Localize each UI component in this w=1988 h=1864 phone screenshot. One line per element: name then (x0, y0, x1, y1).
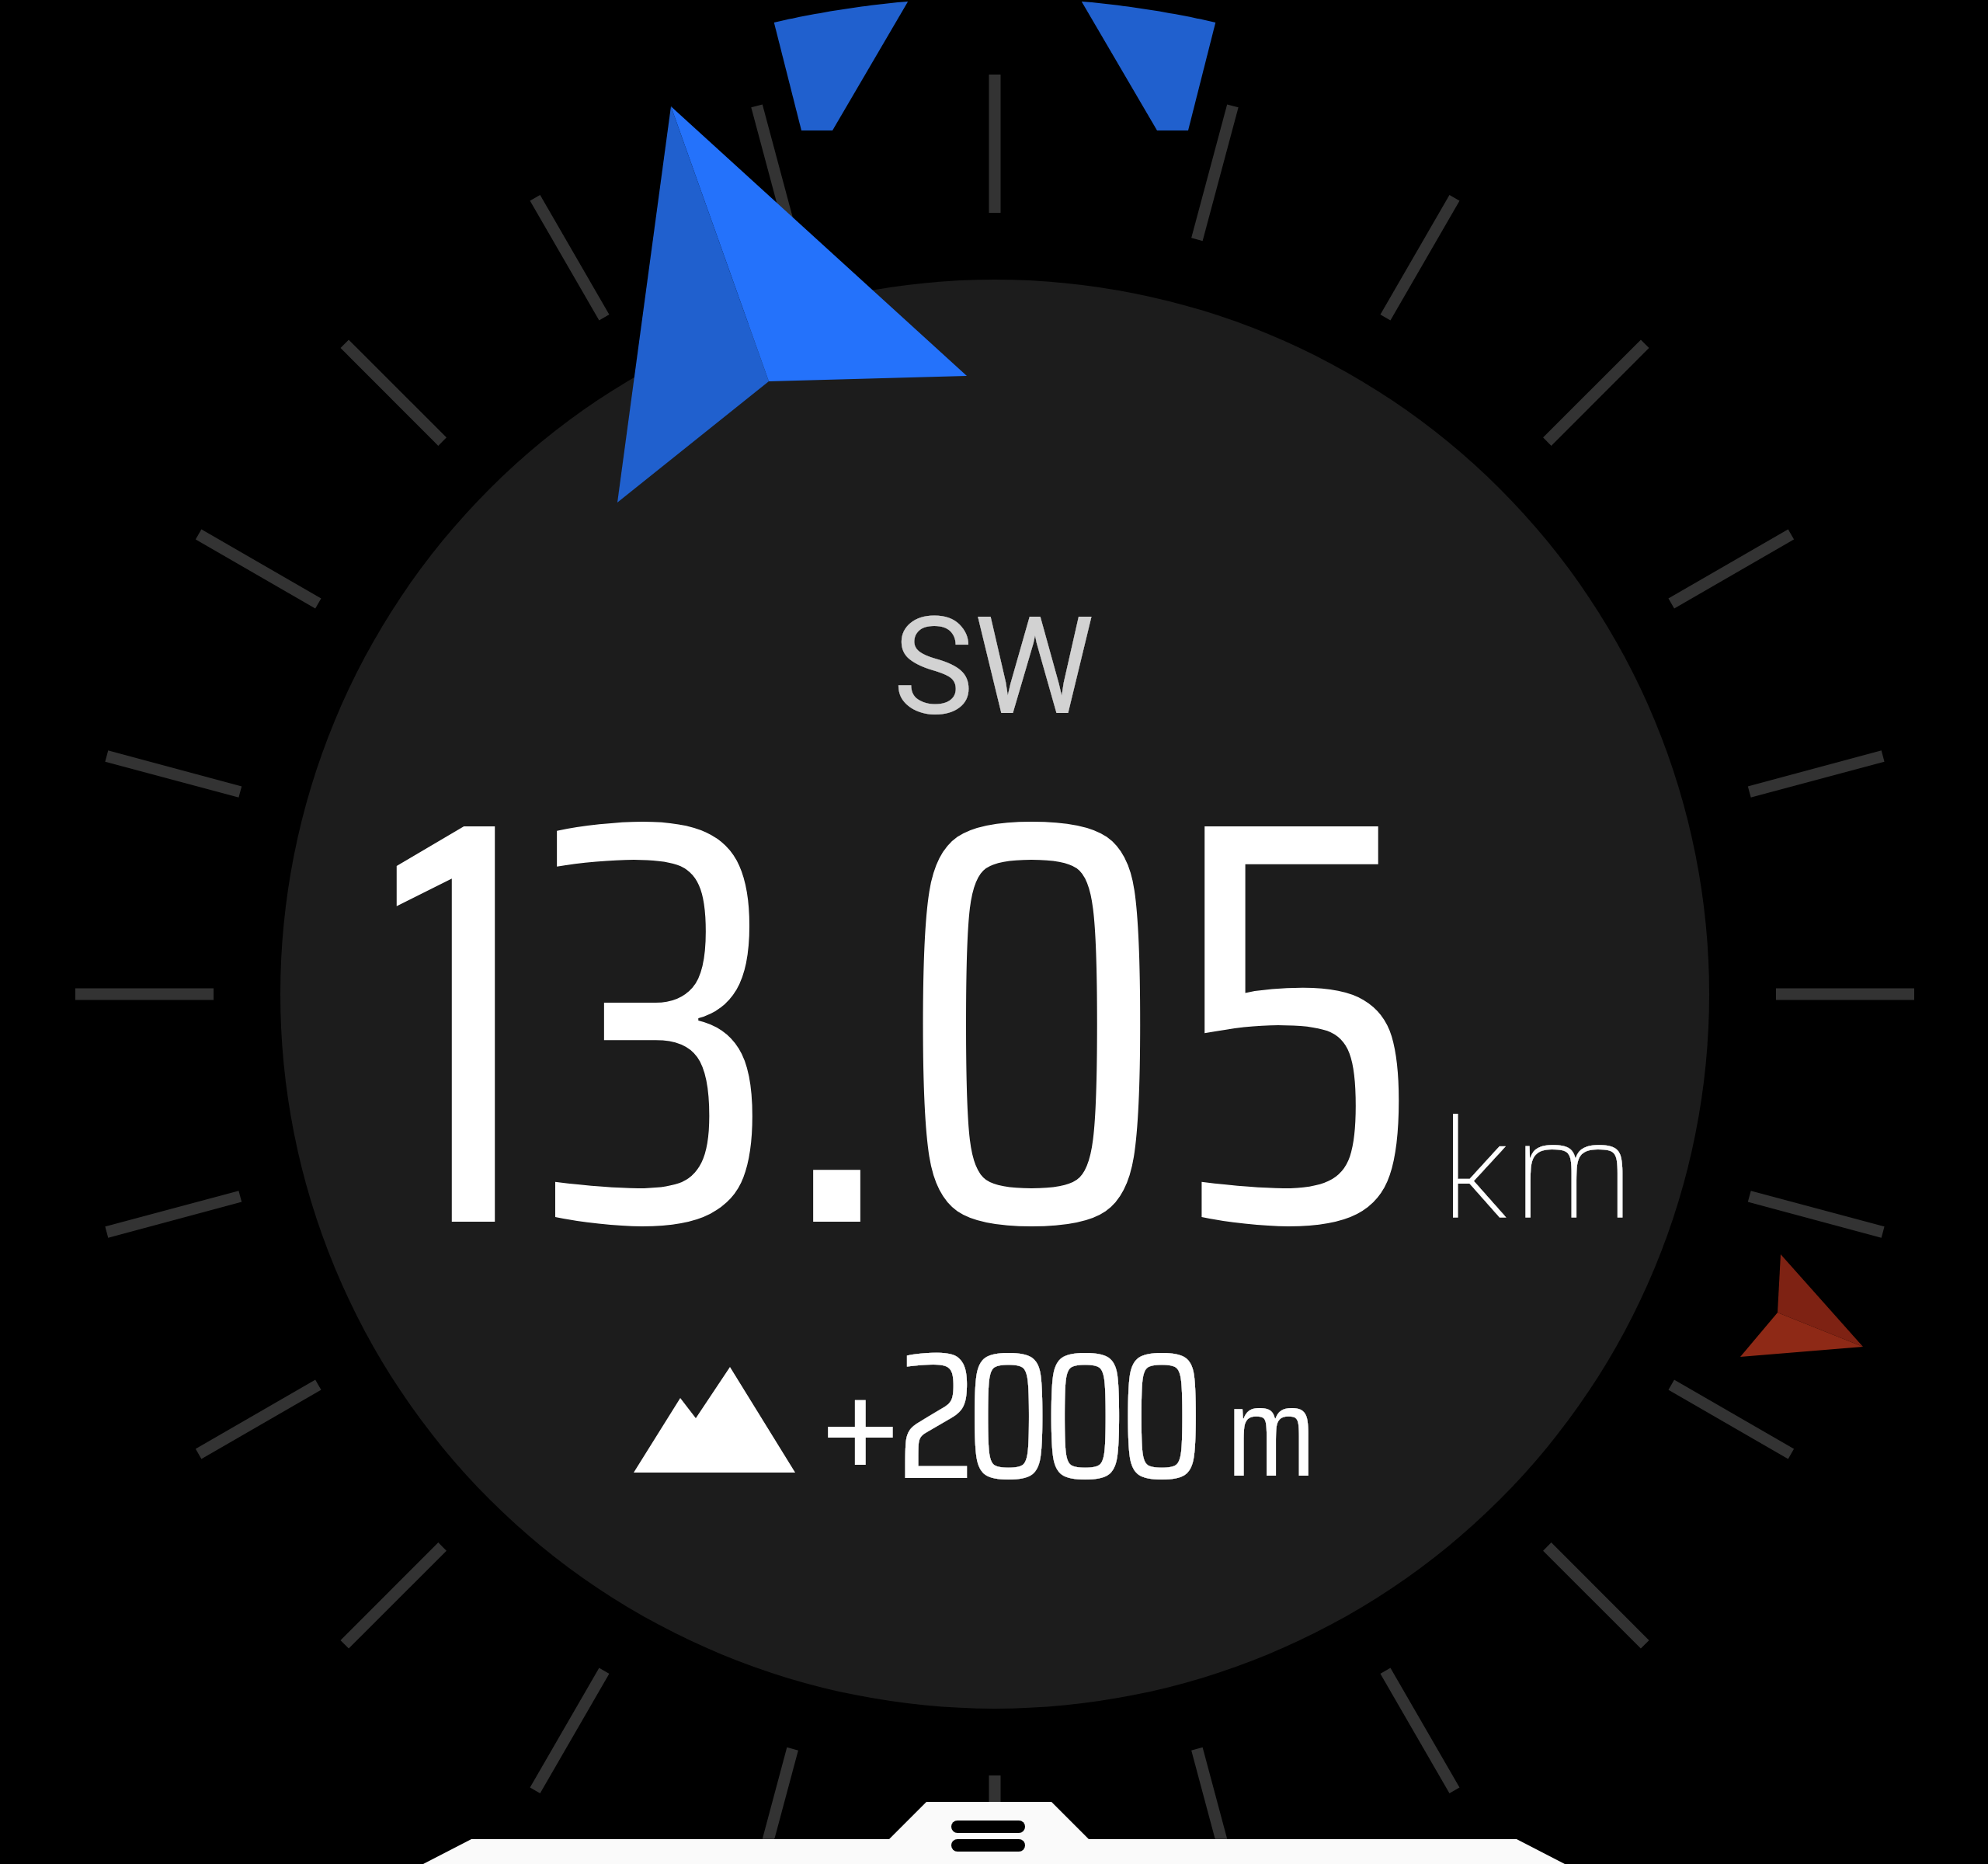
staticText: SW (893, 587, 1095, 746)
button[interactable]: Open menu (889, 1794, 1090, 1864)
staticText: 13.05 (381, 569, 1423, 1474)
staticText: m (1226, 1327, 1316, 1532)
staticText: 2000 (897, 1275, 1196, 1557)
button[interactable]: Compass dial, heading SW, 13.05 km, asce… (280, 280, 1709, 1709)
staticText: + (817, 1275, 904, 1557)
staticText: km (1439, 1059, 1637, 1278)
